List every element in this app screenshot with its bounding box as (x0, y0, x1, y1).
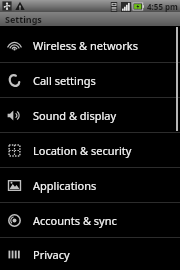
staticText: Applications (33, 178, 97, 193)
button[interactable]: Wireless & networks (0, 26, 180, 62)
staticText: Sound & display (33, 108, 117, 123)
staticText: Settings (5, 13, 42, 25)
button[interactable]: Sound & display (0, 98, 180, 132)
staticText: Call settings (33, 73, 96, 88)
button[interactable]: Applications (0, 168, 180, 202)
staticText: Wireless & networks (33, 38, 138, 53)
staticText: Privacy (33, 247, 70, 262)
staticText: Location & security (33, 143, 132, 158)
button[interactable]: Privacy (0, 238, 180, 270)
button[interactable]: Call settings (0, 63, 180, 97)
button[interactable]: Accounts & sync (0, 203, 180, 237)
staticText: Accounts & sync (33, 213, 117, 228)
staticText: 4:55 pm (147, 1, 178, 12)
button[interactable]: Location & security (0, 133, 180, 167)
